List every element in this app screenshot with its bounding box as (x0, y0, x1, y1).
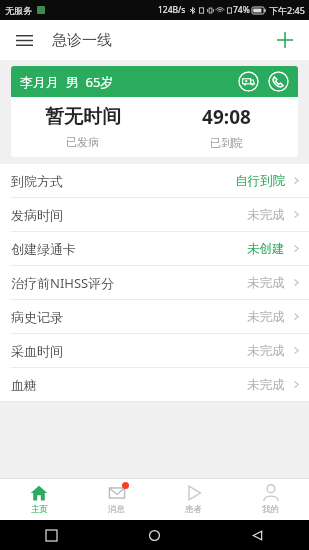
button[interactable]: 病史记录 (0, 300, 309, 333)
button[interactable]: Ambulance (238, 71, 259, 92)
button[interactable]: 消息 (78, 479, 155, 520)
button[interactable]: 主页 (0, 479, 78, 520)
staticText: 发病时间 (11, 207, 63, 223)
button[interactable]: 患者 (155, 479, 232, 520)
staticText: 自行到院 (235, 173, 285, 189)
button[interactable]: Back (206, 520, 309, 550)
staticText: 急诊一线 (52, 31, 112, 50)
staticText: 血糖 (11, 377, 37, 393)
button[interactable]: 采血时间 (0, 334, 309, 367)
staticText: 暂无时间 (45, 105, 121, 129)
staticText: 已发病 (66, 135, 99, 149)
staticText: 49:08 (202, 104, 251, 130)
staticText: 74% (233, 4, 250, 16)
button[interactable]: 发病时间 (0, 198, 309, 231)
staticText: 病史记录 (11, 309, 63, 325)
button[interactable]: 我的 (232, 479, 309, 520)
button[interactable]: 到院方式 (0, 164, 309, 197)
staticText: 我的 (262, 504, 279, 515)
button[interactable]: 血糖 (0, 368, 309, 401)
staticText: 患者 (185, 504, 202, 515)
staticText: 124B/s (158, 4, 186, 16)
button[interactable]: 治疗前NIHSS评分 (0, 266, 309, 299)
button[interactable]: Add (269, 24, 301, 56)
staticText: 未完成 (247, 377, 285, 393)
staticText: 无服务 (5, 5, 32, 16)
staticText: 创建绿通卡 (11, 241, 76, 257)
staticText: 治疗前NIHSS评分 (11, 274, 115, 292)
staticText: 到院方式 (11, 173, 63, 189)
staticText: 消息 (108, 504, 125, 515)
staticText: 未创建 (247, 241, 285, 257)
staticText: 未完成 (247, 207, 285, 223)
staticText: 下午2:45 (269, 4, 305, 16)
staticText: 已到院 (210, 136, 243, 150)
button[interactable]: Menu (8, 24, 40, 56)
button[interactable]: Home (103, 520, 206, 550)
button[interactable]: Call (268, 71, 289, 92)
staticText: 未完成 (247, 343, 285, 359)
staticText: 未完成 (247, 275, 285, 291)
button[interactable]: 创建绿通卡 (0, 232, 309, 265)
button[interactable]: Recents (0, 520, 103, 550)
staticText: 采血时间 (11, 343, 63, 359)
staticText: 主页 (31, 504, 48, 515)
staticText: 李月月 男 65岁 (20, 73, 114, 91)
staticText: 未完成 (247, 309, 285, 325)
